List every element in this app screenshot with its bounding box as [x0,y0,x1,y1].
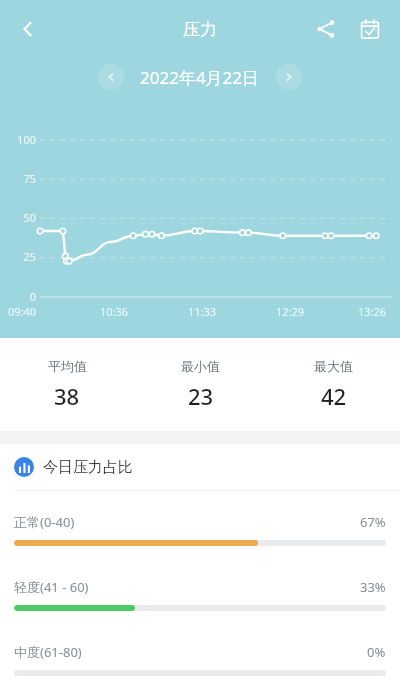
staticText: 12:29 [276,304,305,319]
button[interactable]: 轻度(41 - 60) [0,578,400,611]
staticText: 67% [360,513,386,531]
staticText: 正常(0-40) [14,513,75,531]
button[interactable]: Back [4,5,52,53]
button[interactable]: 中度(61-80) [0,643,400,676]
button[interactable]: 今日压力占比 [0,444,400,490]
staticText: 23 [188,381,214,411]
button[interactable]: Next day [276,64,302,90]
staticText: 平均值 [48,358,87,374]
staticText: 中度(61-80) [14,643,82,661]
button[interactable]: 最小值 [134,358,267,411]
button[interactable]: Share [304,7,348,51]
staticText: 100 [6,132,36,147]
staticText: 75 [6,171,36,186]
staticText: 今日压力占比 [43,458,133,477]
staticText: 13:26 [358,304,387,319]
staticText: 11:33 [188,304,217,319]
staticText: 轻度(41 - 60) [14,578,89,596]
staticText: 最大值 [314,358,353,374]
staticText: 38 [54,381,80,411]
button[interactable]: Previous day [98,64,124,90]
staticText: 42 [321,381,347,411]
staticText: 33% [360,578,386,596]
button[interactable]: 正常(0-40) [0,513,400,546]
button[interactable]: Calendar [348,7,392,51]
button[interactable]: 平均值 [0,358,134,411]
staticText: 2022年4月22日 [140,66,260,89]
staticText: 50 [6,210,36,225]
staticText: 最小值 [181,358,220,374]
staticText: 压力 [183,19,217,40]
staticText: 10:36 [100,304,129,319]
staticText: 09:40 [8,304,37,319]
button[interactable]: 最大值 [267,358,400,411]
staticText: 0 [6,289,36,304]
staticText: 0% [367,643,386,661]
staticText: 25 [6,249,36,264]
